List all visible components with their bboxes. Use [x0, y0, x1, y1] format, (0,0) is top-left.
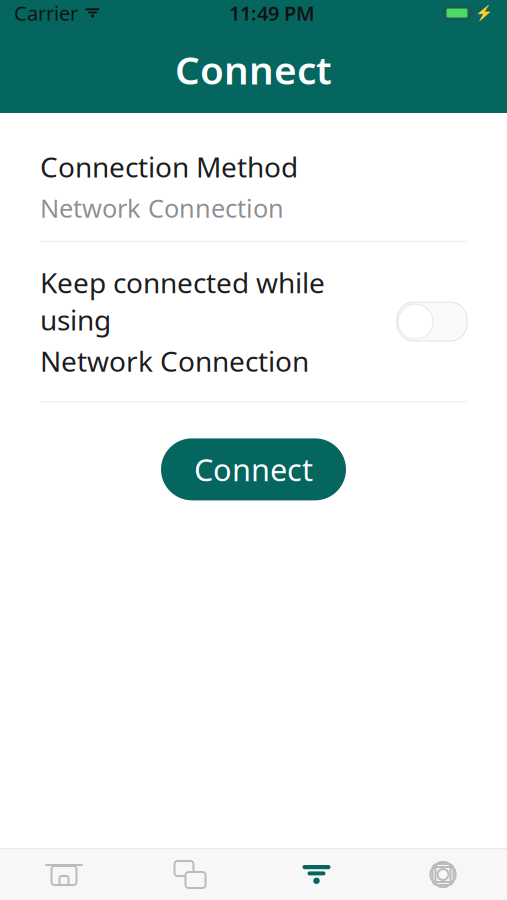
staticText: 11:49 PM: [229, 0, 315, 26]
button[interactable]: Messages: [127, 849, 253, 900]
button[interactable]: Connect: [161, 438, 346, 500]
staticText: Carrier: [14, 0, 78, 26]
button[interactable]: Home: [1, 849, 127, 900]
staticText: Connection Method: [40, 148, 298, 185]
staticText: Connect: [194, 449, 313, 490]
staticText: Connect: [175, 44, 332, 95]
button[interactable]: Settings: [380, 849, 506, 900]
staticText: Network Connection: [40, 342, 309, 379]
button[interactable]: Connect: [253, 849, 380, 900]
button[interactable]: Keep connected while using Network Conne…: [397, 302, 467, 341]
staticText: ⚡: [475, 5, 493, 21]
staticText: Network Connection: [40, 191, 284, 225]
staticText: Keep connected while using: [40, 264, 325, 338]
